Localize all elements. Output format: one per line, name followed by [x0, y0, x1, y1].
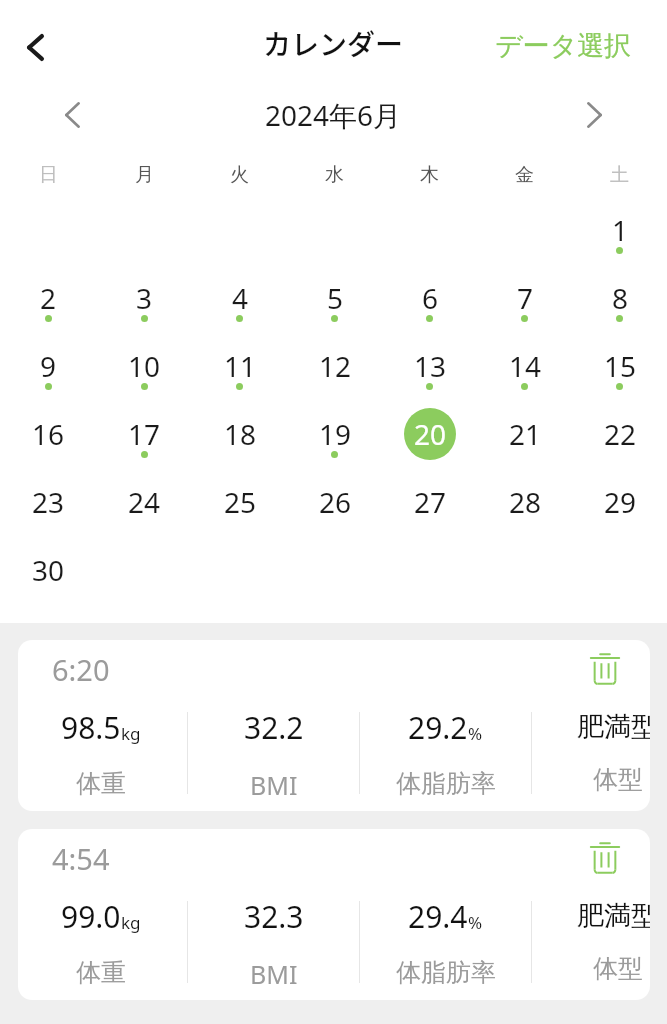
staticText: 29 — [604, 483, 637, 521]
staticText: 1 — [612, 211, 629, 249]
button[interactable]: Next month — [572, 93, 616, 137]
staticText: 4:54 — [52, 839, 110, 878]
staticText: 21 — [509, 415, 542, 453]
staticText: 28 — [509, 483, 542, 521]
staticText: データ選択 — [495, 29, 632, 63]
button[interactable]: 20 — [382, 399, 477, 467]
staticText: 体型 — [593, 953, 643, 984]
staticText: 11 — [224, 347, 257, 385]
staticText: 6 — [422, 279, 439, 317]
staticText: 29.2 — [408, 707, 468, 748]
staticText: カレンダー — [263, 23, 404, 64]
button[interactable]: 16 — [0, 399, 96, 467]
staticText: 肥満型 — [577, 899, 650, 933]
staticText: 19 — [319, 415, 352, 453]
button[interactable]: 4 — [192, 263, 287, 331]
staticText: 体重 — [76, 957, 126, 988]
button[interactable]: 23 — [0, 467, 96, 535]
staticText: kg — [121, 722, 141, 745]
button[interactable]: 17 — [96, 399, 192, 467]
staticText: 4 — [232, 279, 249, 317]
button[interactable]: Back — [6, 18, 64, 76]
staticText: 14 — [509, 347, 542, 385]
staticText: 23 — [32, 483, 65, 521]
staticText: 土 — [610, 163, 629, 187]
staticText: 27 — [414, 483, 447, 521]
staticText: 18 — [224, 415, 257, 453]
staticText: 29.4 — [408, 896, 468, 937]
button[interactable]: 6:20 — [18, 640, 650, 811]
button[interactable]: 2 — [0, 263, 96, 331]
staticText: 9 — [40, 347, 57, 385]
staticText: 3 — [136, 279, 153, 317]
staticText: 98.5 — [61, 707, 121, 748]
button[interactable]: 15 — [572, 331, 667, 399]
button[interactable]: 11 — [192, 331, 287, 399]
button[interactable]: 18 — [192, 399, 287, 467]
button[interactable]: 6 — [382, 263, 477, 331]
staticText: 32.2 — [244, 707, 304, 748]
staticText: % — [468, 722, 483, 745]
button[interactable]: データ選択 — [487, 21, 640, 71]
button[interactable]: 13 — [382, 331, 477, 399]
button[interactable]: 24 — [96, 467, 192, 535]
staticText: 30 — [32, 551, 65, 589]
staticText: 7 — [517, 279, 534, 317]
staticText: 24 — [128, 483, 161, 521]
button[interactable]: 30 — [0, 535, 96, 603]
staticText: 5 — [327, 279, 344, 317]
staticText: 2024年6月 — [265, 96, 402, 134]
button[interactable]: 19 — [287, 399, 382, 467]
staticText: 水 — [325, 163, 344, 187]
button[interactable]: Delete — [583, 836, 627, 880]
button[interactable]: 28 — [477, 467, 572, 535]
button[interactable]: 21 — [477, 399, 572, 467]
button[interactable]: 5 — [287, 263, 382, 331]
staticText: kg — [121, 911, 141, 934]
button[interactable]: 1 — [572, 195, 667, 263]
staticText: 13 — [414, 347, 447, 385]
staticText: 15 — [604, 347, 637, 385]
staticText: 12 — [319, 347, 352, 385]
button[interactable]: 26 — [287, 467, 382, 535]
button[interactable]: 25 — [192, 467, 287, 535]
staticText: % — [468, 911, 483, 934]
staticText: 17 — [128, 415, 161, 453]
staticText: 火 — [230, 163, 249, 187]
staticText: 8 — [612, 279, 629, 317]
staticText: 肥満型 — [577, 710, 650, 744]
staticText: 25 — [224, 483, 257, 521]
staticText: 木 — [420, 163, 439, 187]
staticText: 体脂肪率 — [396, 957, 496, 988]
button[interactable]: 9 — [0, 331, 96, 399]
staticText: 16 — [32, 415, 65, 453]
button[interactable]: 4:54 — [18, 829, 650, 1000]
staticText: 体重 — [76, 768, 126, 799]
staticText: 26 — [319, 483, 352, 521]
staticText: 月 — [135, 163, 154, 187]
button[interactable]: Delete — [583, 647, 627, 691]
staticText: 6:20 — [52, 650, 110, 689]
button[interactable]: 3 — [96, 263, 192, 331]
staticText: 10 — [128, 347, 161, 385]
staticText: 体脂肪率 — [396, 768, 496, 799]
staticText: 金 — [515, 163, 534, 187]
staticText: BMI — [250, 957, 298, 991]
button[interactable]: 27 — [382, 467, 477, 535]
staticText: 体型 — [593, 764, 643, 795]
button[interactable]: 29 — [572, 467, 667, 535]
staticText: BMI — [250, 768, 298, 802]
staticText: 20 — [414, 415, 447, 453]
button[interactable]: 12 — [287, 331, 382, 399]
staticText: 日 — [39, 163, 58, 187]
button[interactable]: Previous month — [50, 93, 94, 137]
staticText: 2 — [40, 279, 57, 317]
button[interactable]: 14 — [477, 331, 572, 399]
button[interactable]: 10 — [96, 331, 192, 399]
button[interactable]: 8 — [572, 263, 667, 331]
staticText: 99.0 — [61, 896, 121, 937]
staticText: 32.3 — [244, 896, 304, 937]
button[interactable]: 7 — [477, 263, 572, 331]
staticText: 22 — [604, 415, 637, 453]
button[interactable]: 22 — [572, 399, 667, 467]
